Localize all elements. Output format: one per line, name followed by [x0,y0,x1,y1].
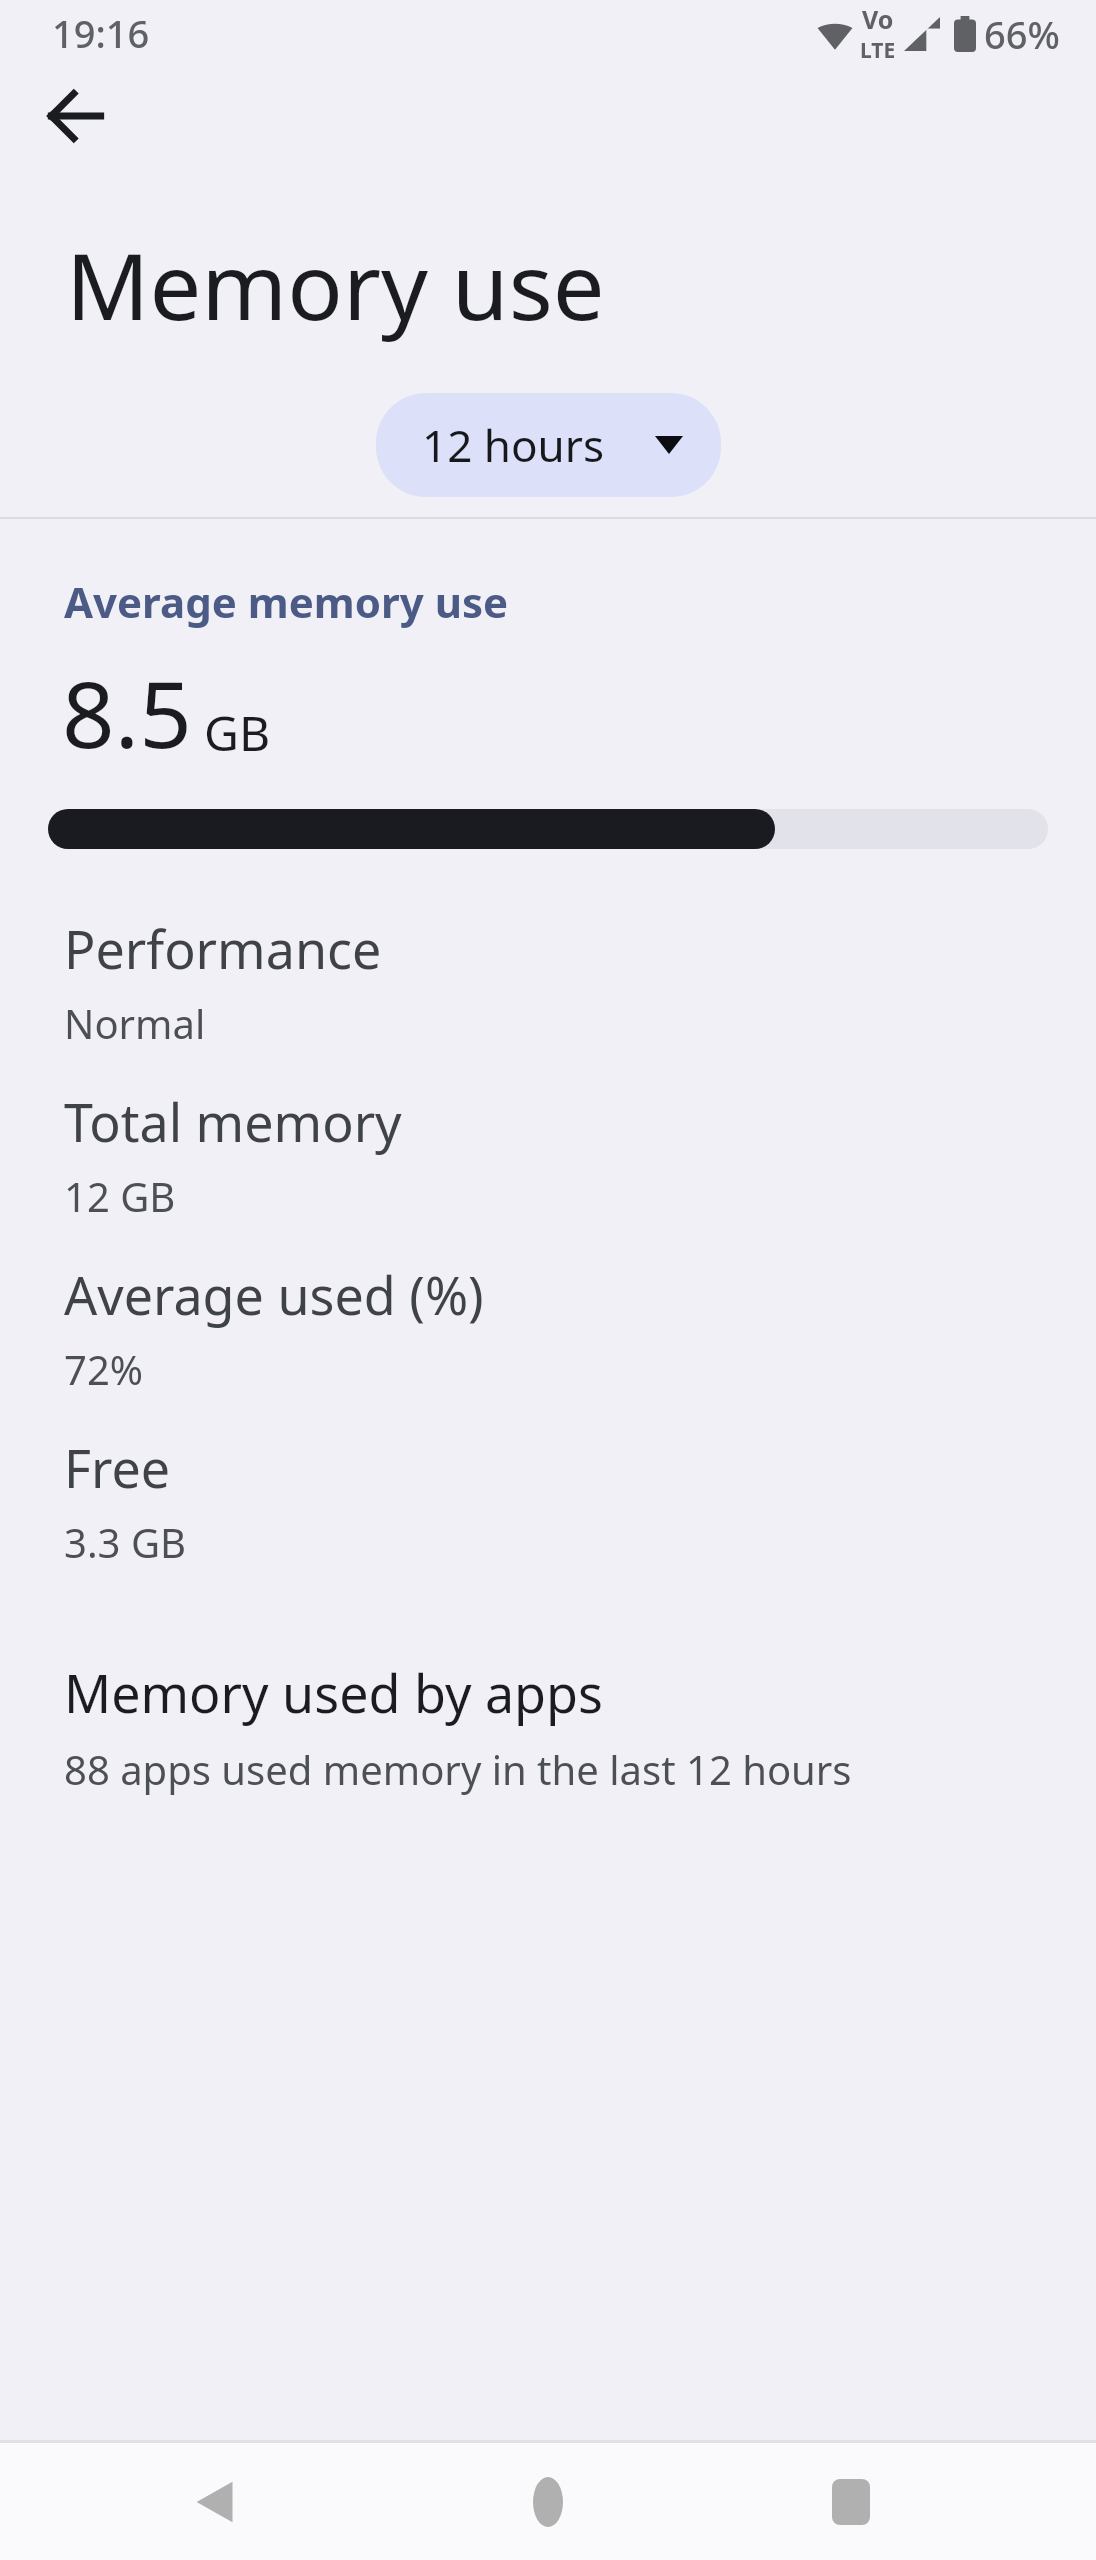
staticText: 72% [64,1342,143,1396]
button[interactable]: Free [0,1414,1096,1587]
staticText: 66% [984,8,1060,60]
button[interactable]: Memory used by apps [0,1651,1096,1802]
staticText: 88 apps used memory in the last 12 hours [64,1742,852,1796]
staticText: GB [204,700,271,765]
button[interactable]: Total memory [0,1068,1096,1241]
staticText: 19:16 [52,7,150,59]
staticText: Free [64,1432,171,1503]
button[interactable]: 12 hours [376,393,721,497]
button[interactable]: Recent apps [796,2447,906,2557]
button[interactable]: Home [493,2447,603,2557]
staticText: Total memory [64,1086,402,1157]
staticText: 3.3 GB [64,1515,186,1569]
staticText: Memory use [66,222,605,347]
button[interactable]: Back [160,2447,270,2557]
staticText: Average memory use [64,573,509,630]
staticText: 12 GB [64,1169,176,1223]
staticText: Normal [64,996,206,1050]
staticText: Average used (%) [64,1259,484,1330]
button[interactable]: Average used (%) [0,1241,1096,1414]
staticText: LTE [860,36,896,65]
staticText: Performance [64,913,382,984]
button[interactable]: Back [26,66,126,166]
button[interactable]: Performance [0,895,1096,1068]
staticText: Vo [862,2,894,36]
staticText: Memory used by apps [64,1657,603,1728]
staticText: 12 hours [422,415,605,475]
staticText: 8.5 [62,650,192,775]
